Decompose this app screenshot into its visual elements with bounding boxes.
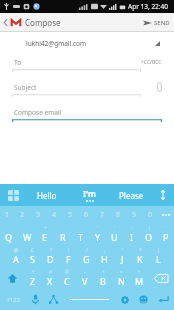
button[interactable]: ©: [58, 267, 76, 289]
button[interactable]: *: [24, 267, 41, 289]
button[interactable]: !: [59, 245, 77, 267]
button[interactable]: Subject: [12, 82, 162, 97]
button[interactable]: ': [89, 223, 106, 245]
staticText: 0: [148, 210, 153, 220]
button[interactable]: +: [36, 223, 54, 245]
staticText: A: [13, 253, 19, 265]
button[interactable]: `: [106, 223, 123, 245]
button[interactable]: ÷: [130, 267, 148, 289]
button[interactable]: 4: [46, 206, 62, 223]
button[interactable]: ~: [76, 267, 94, 289]
staticText: O: [145, 231, 153, 243]
staticText: ?123: [7, 296, 20, 304]
button[interactable]: Space: [62, 289, 116, 310]
button[interactable]: #: [41, 267, 58, 289]
button[interactable]: Compose email: [12, 107, 162, 122]
button[interactable]: (: [149, 245, 167, 267]
staticText: Compose email: [14, 108, 62, 117]
button[interactable]: 8: [110, 206, 126, 223]
staticText: X: [47, 275, 53, 287]
staticText: W: [23, 231, 32, 243]
button[interactable]: 0: [142, 206, 158, 223]
button[interactable]: ?123: [0, 289, 26, 310]
button[interactable]: 2: [15, 206, 30, 223]
staticText: /: [86, 247, 88, 253]
button[interactable]: *: [131, 245, 149, 267]
staticText: lukhi42@gmail.com: [26, 39, 87, 48]
button[interactable]: Q: [0, 223, 18, 245]
staticText: *: [32, 269, 35, 275]
button[interactable]: Keyboard themes: [0, 184, 26, 206]
staticText: ©: [65, 269, 69, 275]
button[interactable]: Settings: [116, 289, 134, 310]
button[interactable]: -: [123, 223, 140, 245]
button[interactable]: Please: [110, 184, 152, 206]
other: Choose account: [155, 41, 160, 46]
button[interactable]: To: [12, 57, 162, 72]
staticText: ?: [50, 247, 52, 253]
staticText: B: [100, 275, 106, 287]
button[interactable]: Shift: [0, 267, 24, 289]
staticText: £: [31, 247, 34, 253]
staticText: |: [148, 225, 151, 231]
staticText: F: [66, 253, 71, 265]
button[interactable]: 7: [94, 206, 110, 223]
button[interactable]: =: [112, 267, 130, 289]
button[interactable]: Hello: [26, 184, 68, 206]
staticText: 7: [100, 210, 105, 220]
button[interactable]: SEND: [139, 17, 174, 29]
button[interactable]: T: [72, 223, 89, 245]
button[interactable]: 6: [78, 206, 94, 223]
staticText: S: [30, 253, 35, 265]
staticText: *: [139, 247, 142, 253]
button[interactable]: Emoji: [134, 289, 152, 310]
staticText: L: [156, 253, 161, 265]
staticText: M: [135, 275, 144, 287]
button[interactable]: Delete: [148, 267, 174, 289]
button[interactable]: 5: [62, 206, 78, 223]
staticText: !: [68, 247, 70, 253]
button[interactable]: Handwriting: [44, 289, 62, 310]
staticText: U: [111, 231, 118, 243]
staticText: 6: [84, 210, 89, 220]
button[interactable]: I'm: [68, 184, 110, 206]
button[interactable]: ,: [95, 245, 113, 267]
button[interactable]: +: [94, 267, 112, 289]
button[interactable]: `: [157, 223, 174, 245]
button[interactable]: @: [7, 245, 24, 267]
staticText: +: [44, 225, 47, 231]
button[interactable]: Voice input: [26, 289, 44, 310]
other: Back: [3, 18, 8, 27]
button[interactable]: Enter: [152, 289, 174, 310]
staticText: `: [114, 225, 116, 231]
button[interactable]: lukhi42@gmail.com: [12, 39, 162, 48]
staticText: `: [165, 225, 167, 231]
staticText: +CC/BCC: [141, 59, 162, 66]
staticText: E: [42, 231, 48, 243]
button[interactable]: /: [77, 245, 95, 267]
button[interactable]: W: [18, 223, 36, 245]
staticText: Please: [119, 190, 144, 201]
button[interactable]: 9: [126, 206, 142, 223]
staticText: Z: [30, 275, 36, 287]
staticText: (: [158, 247, 160, 253]
staticText: Y: [95, 231, 101, 243]
button[interactable]: ': [113, 245, 131, 267]
staticText: V: [82, 275, 88, 287]
button[interactable]: 1: [0, 206, 15, 223]
button[interactable]: More symbols: [158, 206, 174, 223]
staticText: T: [78, 231, 84, 243]
staticText: Apr 13, 22:40: [128, 2, 169, 11]
button[interactable]: Back: [0, 15, 65, 30]
staticText: ': [97, 225, 99, 231]
button[interactable]: |: [140, 223, 157, 245]
button[interactable]: Expand suggestions: [152, 184, 174, 206]
staticText: 3: [36, 210, 41, 220]
staticText: -: [131, 225, 133, 231]
staticText: 8: [116, 210, 121, 220]
button[interactable]: £: [24, 245, 41, 267]
button[interactable]: ?: [41, 245, 59, 267]
button[interactable]: R: [54, 223, 72, 245]
button[interactable]: 3: [30, 206, 46, 223]
staticText: R: [60, 231, 66, 243]
